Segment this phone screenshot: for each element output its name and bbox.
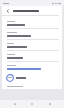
button[interactable]: Back (5, 8, 11, 14)
button[interactable] (2, 29, 62, 39)
button[interactable] (2, 62, 62, 72)
button[interactable] (2, 40, 62, 50)
button[interactable]: Recent apps (47, 101, 53, 107)
button[interactable]: Back (12, 101, 18, 107)
button[interactable] (2, 72, 62, 83)
button[interactable] (2, 18, 62, 28)
button[interactable]: Home (29, 101, 35, 107)
button[interactable] (2, 51, 62, 61)
button[interactable] (2, 85, 62, 89)
